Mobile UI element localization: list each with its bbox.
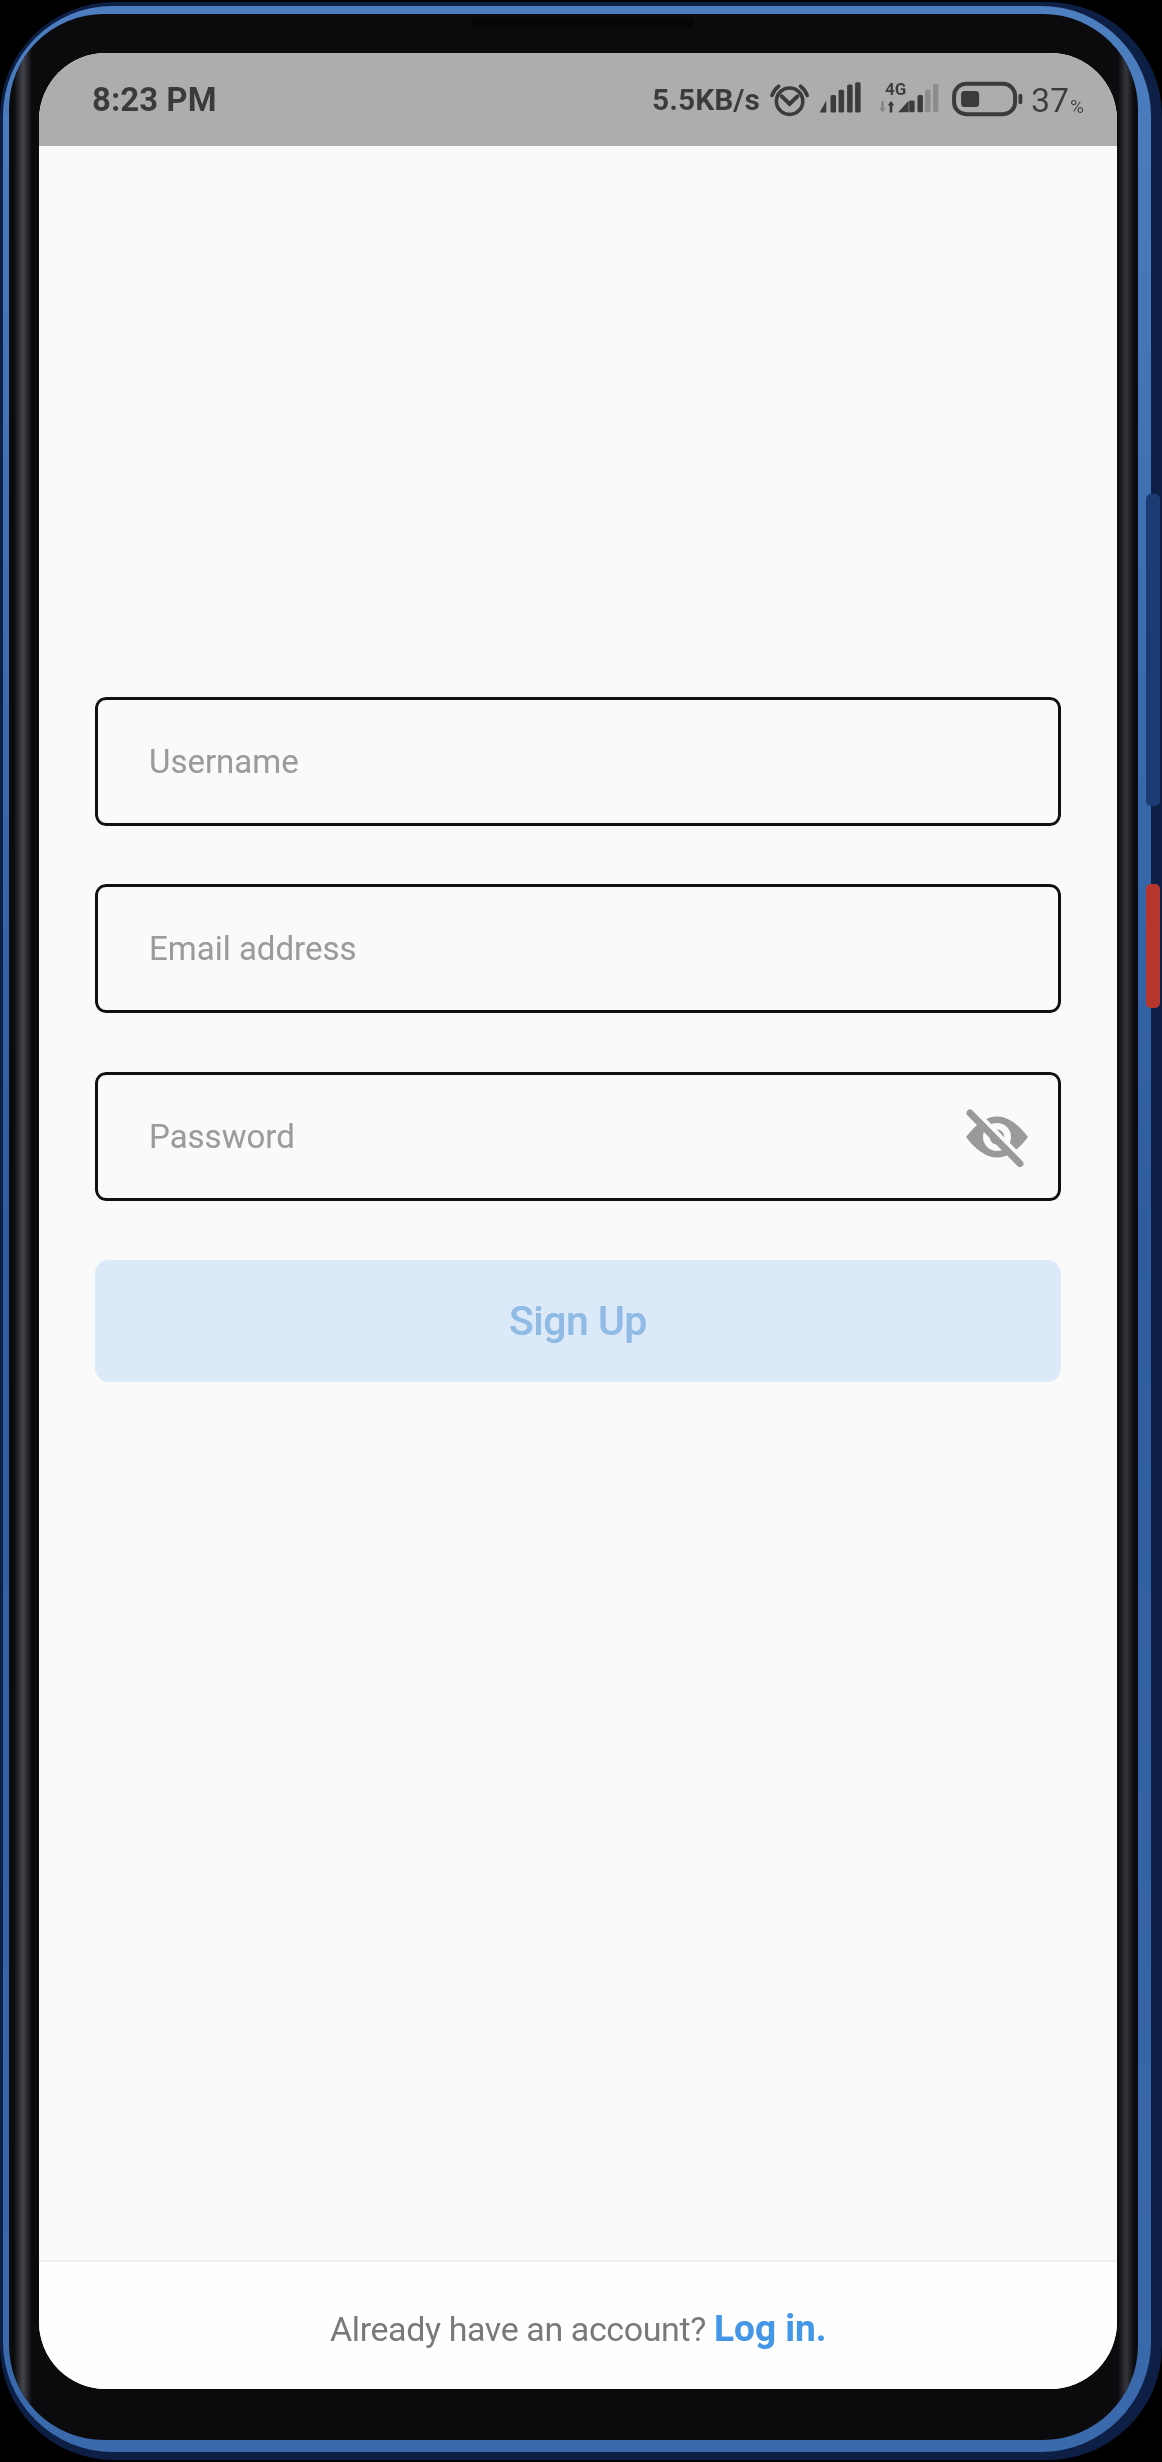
staticText: Username xyxy=(149,742,299,781)
button[interactable]: Password xyxy=(95,1072,1061,1201)
staticText: Password xyxy=(149,1117,295,1156)
staticText: Email address xyxy=(149,929,357,968)
button[interactable]: Sign Up xyxy=(95,1260,1061,1382)
staticText: % xyxy=(1070,95,1084,117)
button[interactable]: Username xyxy=(95,697,1061,826)
staticText: 4G xyxy=(885,79,907,99)
staticText: 8:23 PM xyxy=(92,80,217,119)
staticText: Sign Up xyxy=(509,1297,647,1345)
staticText: 5.5KB/s xyxy=(652,82,761,117)
button[interactable]: Email address xyxy=(95,884,1061,1013)
button[interactable]: Log in. xyxy=(714,2307,827,2350)
staticText: Already have an account? xyxy=(330,2309,714,2349)
staticText: 37 xyxy=(1031,80,1070,120)
button[interactable] xyxy=(965,1105,1029,1169)
